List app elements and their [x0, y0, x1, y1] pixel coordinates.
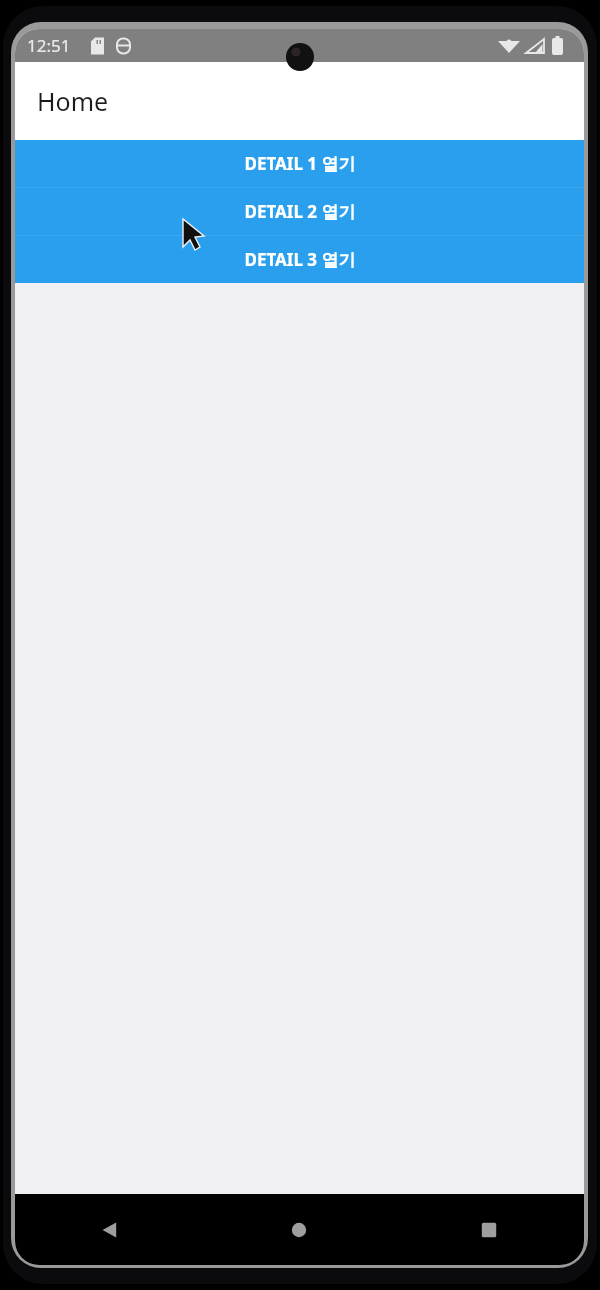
staticText: DETAIL 1 열기 — [244, 152, 356, 175]
staticText: 12:51 — [27, 34, 71, 57]
staticText: DETAIL 2 열기 — [244, 200, 356, 223]
button[interactable]: Home — [204, 1194, 394, 1265]
button[interactable]: Recent apps — [394, 1194, 584, 1265]
staticText: Home — [37, 84, 109, 118]
button[interactable]: DETAIL 1 열기 — [15, 140, 584, 187]
button[interactable]: DETAIL 3 열기 — [15, 236, 584, 283]
staticText: DETAIL 3 열기 — [244, 248, 356, 271]
button[interactable]: DETAIL 2 열기 — [15, 188, 584, 235]
button[interactable]: Back — [15, 1194, 204, 1265]
